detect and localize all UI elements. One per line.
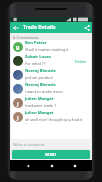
button[interactable]: B: [11, 40, 91, 54]
staticText: i want to make more: [25, 89, 63, 94]
staticText: Neeraj Bhonsle: [25, 82, 57, 88]
staticText: Trade Details: [23, 24, 56, 31]
staticText: Zubair Lucas: [25, 54, 51, 60]
button[interactable]: Back: [22, 160, 33, 171]
staticText: 1 minute ago: [25, 109, 45, 110]
button[interactable]: Share: [81, 22, 92, 33]
staticText: J: [17, 100, 19, 107]
button[interactable]: Home: [46, 160, 57, 171]
staticText: Julien Mangat: [25, 110, 54, 116]
staticText: For what ??: [25, 61, 46, 66]
staticText: 1 minute ago: [25, 53, 45, 54]
staticText: B: [16, 44, 20, 51]
button[interactable]: Neeraj Bhonsle: [11, 82, 91, 96]
button[interactable]: Back: [10, 22, 21, 33]
staticText: Write a comment: [13, 142, 45, 147]
button[interactable]: J: [11, 110, 91, 124]
button[interactable]: Neeraj Bhonsle: [11, 68, 91, 82]
staticText: oh well nice! thought you had it: [25, 117, 83, 122]
staticText: hardware trade 1: [25, 103, 57, 108]
button[interactable]: Write a comment: [10, 139, 92, 149]
staticText: Julien Mangat: [25, 96, 54, 102]
staticText: Delete: [75, 59, 87, 64]
staticText: Shall it matter making it: [25, 47, 69, 52]
staticText: pichon product: [25, 75, 53, 80]
button[interactable]: Zubair Lucas: [11, 54, 91, 68]
button[interactable]: SEND: [12, 150, 90, 159]
button[interactable]: Recent apps: [69, 160, 80, 171]
staticText: SEND: [45, 152, 57, 158]
button[interactable]: Delete: [73, 57, 89, 66]
staticText: 1 minute ago: [25, 67, 45, 68]
staticText: 1 minute ago: [25, 81, 45, 82]
staticText: 1 minute ago: [25, 123, 45, 124]
staticText: 6 Comments: [13, 34, 39, 40]
staticText: Neeraj Bhonsle: [25, 68, 57, 74]
staticText: Ben Potter: [25, 40, 47, 46]
staticText: J: [17, 114, 19, 121]
button[interactable]: J: [11, 96, 91, 110]
staticText: 1 minute ago: [25, 95, 45, 96]
